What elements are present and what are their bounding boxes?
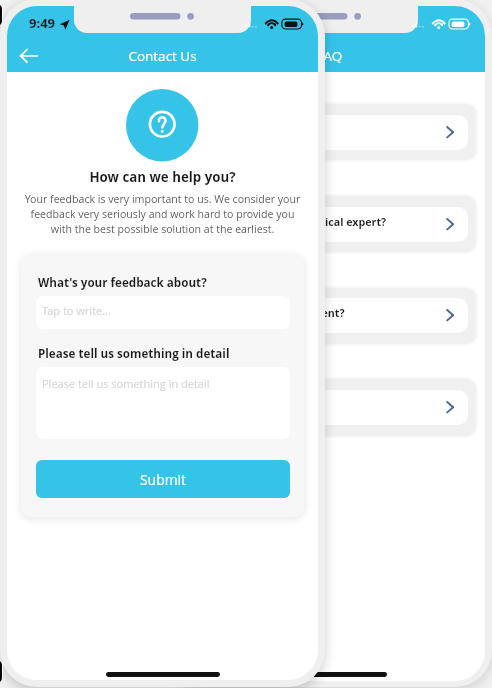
button[interactable]: Submit: [36, 460, 290, 498]
staticText: Tap to write...: [42, 303, 111, 318]
button[interactable]: How do I make a payment?: [190, 298, 468, 333]
button[interactable]: Please tell us something in detail: [36, 367, 290, 439]
staticText: How can we help you?: [7, 168, 318, 680]
staticText: 9:49: [29, 14, 55, 32]
staticText: feedback very seriously and work hard to…: [7, 207, 318, 680]
button[interactable]: Back: [13, 44, 45, 68]
staticText: with the best possible solution at the e…: [7, 222, 318, 680]
staticText: How do I consult a medical expert?: [201, 215, 387, 230]
staticText: Please tell us something in detail: [42, 376, 210, 391]
staticText: What's your feedback about?: [38, 275, 207, 291]
staticText: FAQ: [174, 47, 485, 681]
staticText: Submit: [36, 470, 290, 489]
button[interactable]: How do I register?: [190, 115, 468, 150]
staticText: How do I make a payment?: [201, 306, 345, 321]
button[interactable]: How do I consult a medical expert?: [190, 207, 468, 242]
staticText: Your feedback is very important to us. W…: [7, 192, 318, 680]
button[interactable]: Can I get a refund?: [190, 390, 468, 425]
button[interactable]: Tap to write...: [36, 296, 290, 329]
staticText: Contact Us: [7, 47, 318, 680]
staticText: Please tell us something in detail: [38, 346, 230, 362]
